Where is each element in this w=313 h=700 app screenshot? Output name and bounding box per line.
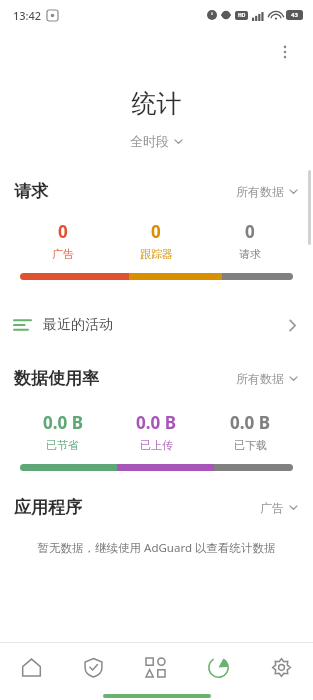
staticText: 暂无数据，继续使用 AdGuard 以查看统计数据: [0, 540, 313, 556]
staticText: 数据使用率: [14, 368, 99, 389]
staticText: 全时段: [130, 133, 169, 149]
button[interactable]: 广告: [255, 497, 303, 518]
staticText: 0.0 B: [43, 411, 83, 434]
button[interactable]: 全时段: [124, 131, 189, 151]
button[interactable]: 所有数据: [231, 368, 303, 389]
staticText: 统计: [0, 88, 313, 119]
button[interactable]: 最近的活动: [0, 310, 313, 340]
staticText: 43: [291, 11, 298, 19]
staticText: 广告: [52, 247, 74, 261]
staticText: 已节省: [46, 438, 79, 452]
button[interactable]: Protection: [62, 643, 124, 692]
staticText: 13:42: [13, 8, 42, 23]
staticText: 0: [151, 220, 161, 243]
staticText: 所有数据: [236, 184, 284, 199]
button[interactable]: Settings: [250, 643, 313, 692]
staticText: 广告: [260, 500, 284, 515]
staticText: 已下载: [234, 438, 267, 452]
staticText: 已上传: [140, 438, 173, 452]
staticText: 0: [58, 220, 68, 243]
button[interactable]: Apps: [124, 643, 187, 692]
staticText: 跟踪器: [140, 247, 173, 261]
staticText: 请求: [239, 247, 261, 261]
staticText: 所有数据: [236, 371, 284, 386]
staticText: 请求: [14, 181, 48, 202]
staticText: 0.0 B: [136, 411, 176, 434]
staticText: 应用程序: [14, 497, 82, 518]
button[interactable]: 所有数据: [231, 181, 303, 202]
staticText: 最近的活动: [43, 316, 113, 334]
staticText: 0.0 B: [230, 411, 270, 434]
button[interactable]: More options: [265, 32, 305, 72]
staticText: 0: [245, 220, 255, 243]
staticText: HD: [238, 12, 246, 19]
button[interactable]: Home: [0, 643, 62, 692]
button[interactable]: Statistics: [187, 643, 250, 692]
